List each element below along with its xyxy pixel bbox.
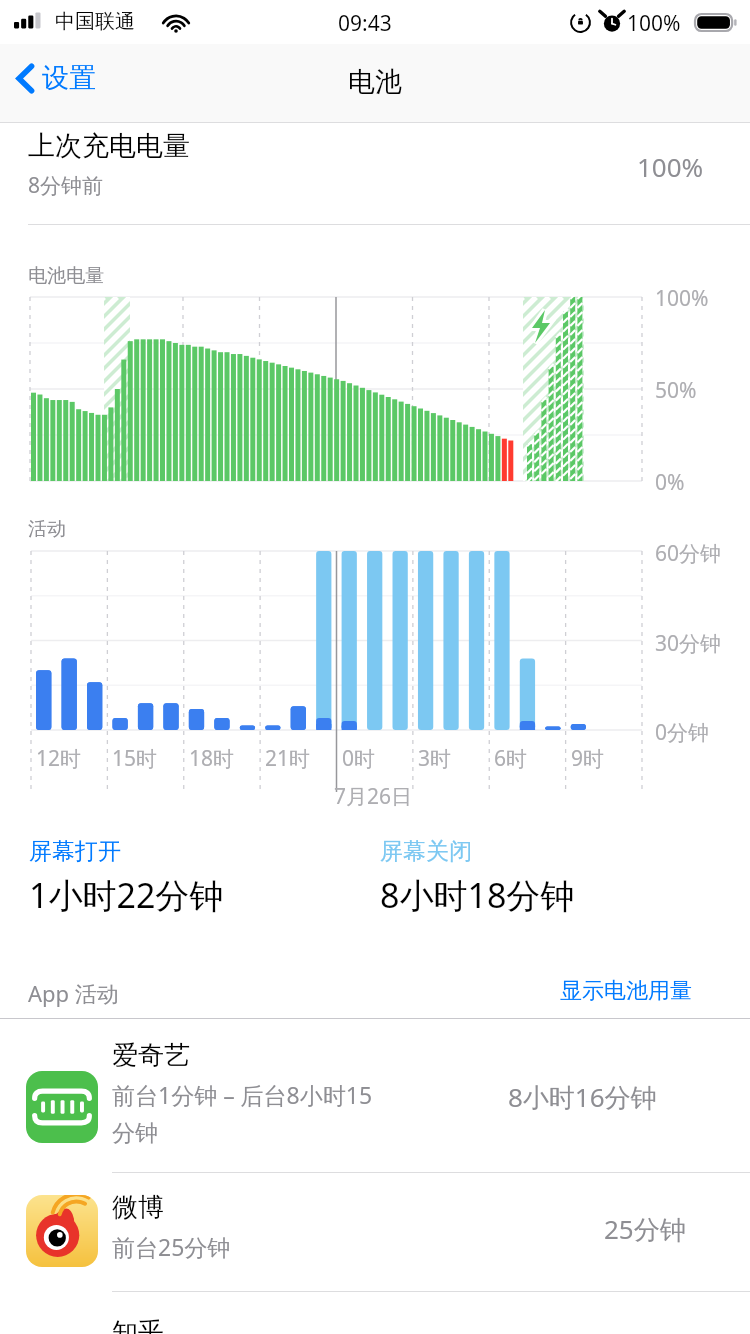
button[interactable]: 微博 bbox=[0, 1173, 750, 1291]
staticText: 12时 bbox=[36, 744, 82, 773]
staticText: 0分钟 bbox=[655, 718, 710, 747]
other: 爱奇艺 bbox=[26, 1071, 98, 1143]
staticText: 前台1分钟 – 后台8小时15 分钟 bbox=[112, 1079, 512, 1148]
staticText: 6时 bbox=[494, 744, 528, 773]
staticText: 30分钟 bbox=[655, 629, 722, 658]
staticText: 3时 bbox=[418, 744, 452, 773]
staticText: 中国联通 bbox=[55, 9, 135, 34]
staticText: 0% bbox=[655, 468, 685, 497]
staticText: 0时 bbox=[342, 744, 376, 773]
button[interactable]: 知乎 bbox=[0, 1292, 750, 1334]
staticText: App 活动 bbox=[28, 978, 119, 1008]
other: Rotation lock bbox=[570, 12, 591, 33]
staticText: 显示电池用量 bbox=[560, 977, 692, 1005]
staticText: 100% bbox=[655, 284, 709, 313]
staticText: 100% bbox=[637, 149, 704, 184]
staticText: 屏幕关闭 bbox=[380, 837, 472, 866]
button[interactable]: 屏幕打开 bbox=[20, 835, 350, 935]
staticText: 21时 bbox=[265, 744, 311, 773]
other: Battery 100% bbox=[694, 13, 738, 32]
staticText: 100% bbox=[627, 9, 681, 38]
staticText: 设置 bbox=[42, 61, 96, 95]
button[interactable]: 设置 bbox=[8, 56, 104, 100]
staticText: 15时 bbox=[112, 744, 158, 773]
button[interactable]: 爱奇艺 bbox=[0, 1019, 750, 1172]
staticText: 电池 bbox=[0, 65, 750, 99]
staticText: 屏幕打开 bbox=[29, 837, 121, 866]
staticText: 8小时16分钟 bbox=[508, 1079, 657, 1115]
staticText: 18时 bbox=[189, 744, 235, 773]
staticText: 前台25分钟 bbox=[112, 1231, 231, 1262]
button[interactable]: 屏幕关闭 bbox=[360, 835, 690, 935]
staticText: 25分钟 bbox=[604, 1211, 686, 1247]
staticText: 1小时22分钟 bbox=[29, 872, 224, 918]
other: Alarm bbox=[601, 11, 623, 33]
button[interactable]: 显示电池用量 bbox=[552, 970, 700, 1012]
staticText: 活动 bbox=[28, 517, 66, 541]
staticText: 60分钟 bbox=[655, 539, 722, 568]
staticText: 9时 bbox=[571, 744, 605, 773]
staticText: 知乎 bbox=[112, 1316, 164, 1334]
staticText: 7月26日 bbox=[334, 782, 413, 811]
button[interactable]: 上次充电电量 bbox=[0, 123, 750, 224]
staticText: 50% bbox=[655, 376, 697, 405]
staticText: 微博 bbox=[112, 1191, 164, 1224]
staticText: 8小时18分钟 bbox=[380, 872, 575, 918]
staticText: 上次充电电量 bbox=[28, 129, 190, 163]
staticText: 09:43 bbox=[338, 9, 392, 38]
other: 微博 bbox=[26, 1195, 98, 1267]
staticText: 8分钟前 bbox=[28, 171, 104, 200]
staticText: 电池电量 bbox=[28, 264, 104, 288]
staticText: 爱奇艺 bbox=[112, 1039, 190, 1072]
